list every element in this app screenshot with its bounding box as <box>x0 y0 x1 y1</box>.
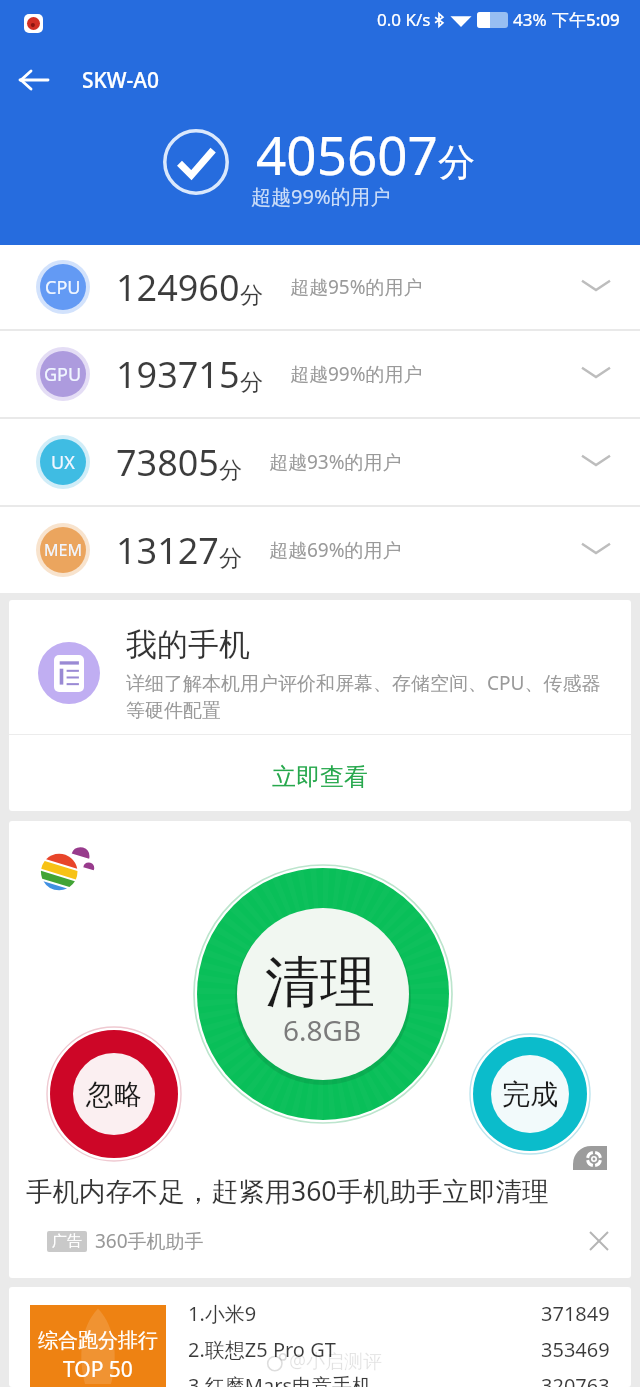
staticText: UX <box>51 450 75 475</box>
staticText: 分 <box>240 368 263 397</box>
staticText: 1.小米9 <box>188 1300 257 1327</box>
staticText: 综合跑分排行 <box>38 1328 158 1353</box>
staticText: 完成 <box>502 1077 558 1112</box>
button[interactable]: Expand <box>566 257 626 317</box>
staticText: GPU <box>44 362 82 387</box>
staticText: 广告 <box>52 1232 82 1251</box>
staticText: 超越69%的用户 <box>269 537 402 563</box>
staticText: 超越99%的用户 <box>290 361 423 387</box>
button[interactable]: MEM <box>0 507 640 593</box>
button[interactable]: GPU <box>0 331 640 417</box>
staticText: 73805 <box>116 438 219 487</box>
button[interactable]: 清理 <box>193 864 453 1124</box>
button[interactable]: CPU <box>0 245 640 329</box>
staticText: 124960 <box>116 263 240 312</box>
staticText: 分 <box>219 544 242 573</box>
staticText: 分 <box>240 281 263 310</box>
staticText: 13127 <box>116 526 219 575</box>
button[interactable]: Expand <box>566 344 626 404</box>
button[interactable]: 立即查看 <box>9 735 631 811</box>
staticText: 超越93%的用户 <box>269 449 402 475</box>
staticText: 43% <box>513 8 547 31</box>
button[interactable]: 手机内存不足，赶紧用360手机助手立即清理 <box>9 1161 631 1213</box>
staticText: 立即查看 <box>272 762 368 792</box>
button[interactable]: 忽略 <box>47 1027 181 1161</box>
staticText: CPU <box>45 275 81 300</box>
staticText: 详细了解本机用户评价和屏幕、存储空间、CPU、传感器 等硬件配置 <box>126 670 601 723</box>
button[interactable]: Expand <box>566 520 626 580</box>
staticText: 超越95%的用户 <box>290 274 423 300</box>
staticText: SKW-A0 <box>82 66 160 95</box>
staticText: 忽略 <box>86 1077 142 1112</box>
button[interactable]: 综合跑分排行 <box>9 1287 631 1387</box>
staticText: 353469 <box>541 1336 610 1363</box>
staticText: 下午5:09 <box>552 8 620 31</box>
button[interactable]: Close ad <box>579 1221 619 1261</box>
staticText: 3.红魔Mars电竞手机 <box>188 1372 372 1387</box>
staticText: 分 <box>438 139 475 186</box>
staticText: TOP 50 <box>63 1355 133 1384</box>
staticText: 371849 <box>541 1300 610 1327</box>
staticText: 2.联想Z5 Pro GT <box>188 1336 336 1363</box>
staticText: 0.0 K/s <box>377 8 431 31</box>
staticText: @小启测评 <box>289 1348 383 1374</box>
staticText: 我的手机 <box>126 625 250 664</box>
staticText: 分 <box>219 456 242 485</box>
button[interactable]: Back <box>0 56 68 104</box>
staticText: 清理 <box>265 948 375 1017</box>
staticText: 193715 <box>116 350 240 399</box>
button[interactable]: 完成 <box>470 1034 590 1154</box>
staticText: 405607 <box>256 118 438 190</box>
staticText: 6.8GB <box>283 1011 362 1049</box>
staticText: 超越99%的用户 <box>251 183 391 210</box>
staticText: 手机内存不足，赶紧用360手机助手立即清理 <box>26 1173 549 1209</box>
button[interactable]: 我的手机 <box>9 600 631 731</box>
button[interactable]: UX <box>0 419 640 505</box>
staticText: MEM <box>44 539 82 561</box>
button[interactable]: Expand <box>566 432 626 492</box>
staticText: 360手机助手 <box>95 1228 204 1254</box>
staticText: 320763 <box>541 1372 610 1387</box>
